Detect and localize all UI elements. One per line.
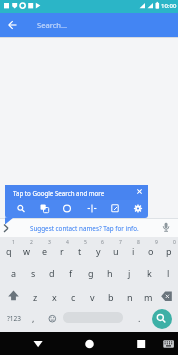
button[interactable] — [129, 334, 153, 353]
staticText: 8 — [137, 239, 140, 246]
staticText: 4 — [66, 239, 69, 246]
staticText: 3 — [48, 239, 51, 246]
button[interactable] — [5, 185, 148, 218]
staticText: 9 — [155, 239, 158, 246]
button[interactable]: a — [6, 265, 22, 281]
button[interactable]: h — [102, 265, 118, 281]
staticText: a — [11, 267, 17, 279]
staticText: e — [42, 245, 48, 257]
button[interactable]: p — [161, 243, 177, 259]
button[interactable]: v — [84, 289, 100, 305]
staticText: 1 — [12, 239, 15, 246]
button[interactable]: x — [46, 289, 62, 305]
button[interactable]: i — [125, 243, 141, 259]
staticText: Tap to Google Search and more — [13, 189, 105, 197]
staticText: . — [138, 312, 141, 324]
button[interactable]: o — [143, 243, 159, 259]
button[interactable]: Search… — [37, 13, 117, 37]
button[interactable]: k — [141, 265, 157, 281]
staticText: r — [60, 245, 64, 257]
staticText: x — [52, 291, 57, 303]
staticText: n — [127, 291, 133, 303]
staticText: m — [144, 291, 153, 303]
staticText: g — [88, 267, 94, 279]
button[interactable]: r — [54, 243, 70, 259]
staticText: b — [108, 291, 114, 303]
button[interactable]: Suggest contact names? Tap for info. — [14, 220, 154, 236]
staticText: j — [128, 267, 131, 279]
staticText: 7 — [119, 239, 122, 246]
staticText: 10:00 — [161, 2, 177, 10]
staticText: l — [167, 267, 170, 279]
staticText: ?123 — [7, 314, 21, 323]
button[interactable]: g — [83, 265, 99, 281]
button[interactable]: l — [160, 265, 176, 281]
button[interactable]: . — [133, 310, 145, 326]
button[interactable]: d — [44, 265, 60, 281]
staticText: Search… — [37, 20, 68, 30]
button[interactable]: j — [121, 265, 137, 281]
staticText: i — [132, 245, 135, 257]
staticText: 5 — [84, 239, 87, 246]
button[interactable]: f — [63, 265, 79, 281]
button[interactable]: t — [72, 243, 88, 259]
button[interactable]: y — [90, 243, 106, 259]
button[interactable] — [0, 13, 178, 37]
staticText: 0 — [173, 239, 176, 246]
staticText: t — [78, 245, 82, 257]
staticText: v — [90, 291, 95, 303]
button[interactable]: ?123 — [4, 311, 23, 326]
button[interactable]: b — [103, 289, 119, 305]
staticText: y — [96, 245, 101, 257]
staticText: f — [69, 267, 73, 279]
button[interactable] — [78, 334, 102, 353]
button[interactable] — [152, 309, 172, 329]
button[interactable]: m — [140, 289, 156, 305]
staticText: 6 — [101, 239, 104, 246]
staticText: c — [71, 291, 76, 303]
staticText: p — [166, 245, 172, 257]
button[interactable]: q — [1, 243, 17, 259]
staticText: o — [148, 245, 154, 257]
staticText: z — [33, 291, 38, 303]
button[interactable]: u — [108, 243, 124, 259]
staticText: Suggest contact names? Tap for info. — [30, 224, 139, 233]
staticText: u — [113, 245, 119, 257]
staticText: , — [32, 312, 35, 324]
staticText: s — [31, 267, 36, 279]
staticText: w — [23, 245, 31, 257]
button[interactable]: c — [65, 289, 81, 305]
staticText: h — [107, 267, 113, 279]
staticText: 2 — [30, 239, 33, 246]
button[interactable] — [158, 334, 178, 353]
button[interactable]: , — [27, 310, 39, 326]
button[interactable] — [26, 334, 50, 353]
staticText: k — [147, 267, 152, 279]
button[interactable]: s — [25, 265, 41, 281]
staticText: q — [6, 245, 12, 257]
button[interactable]: w — [19, 243, 35, 259]
button[interactable]: z — [27, 289, 43, 305]
button[interactable]: n — [122, 289, 138, 305]
staticText: d — [49, 267, 55, 279]
button[interactable]: e — [37, 243, 53, 259]
